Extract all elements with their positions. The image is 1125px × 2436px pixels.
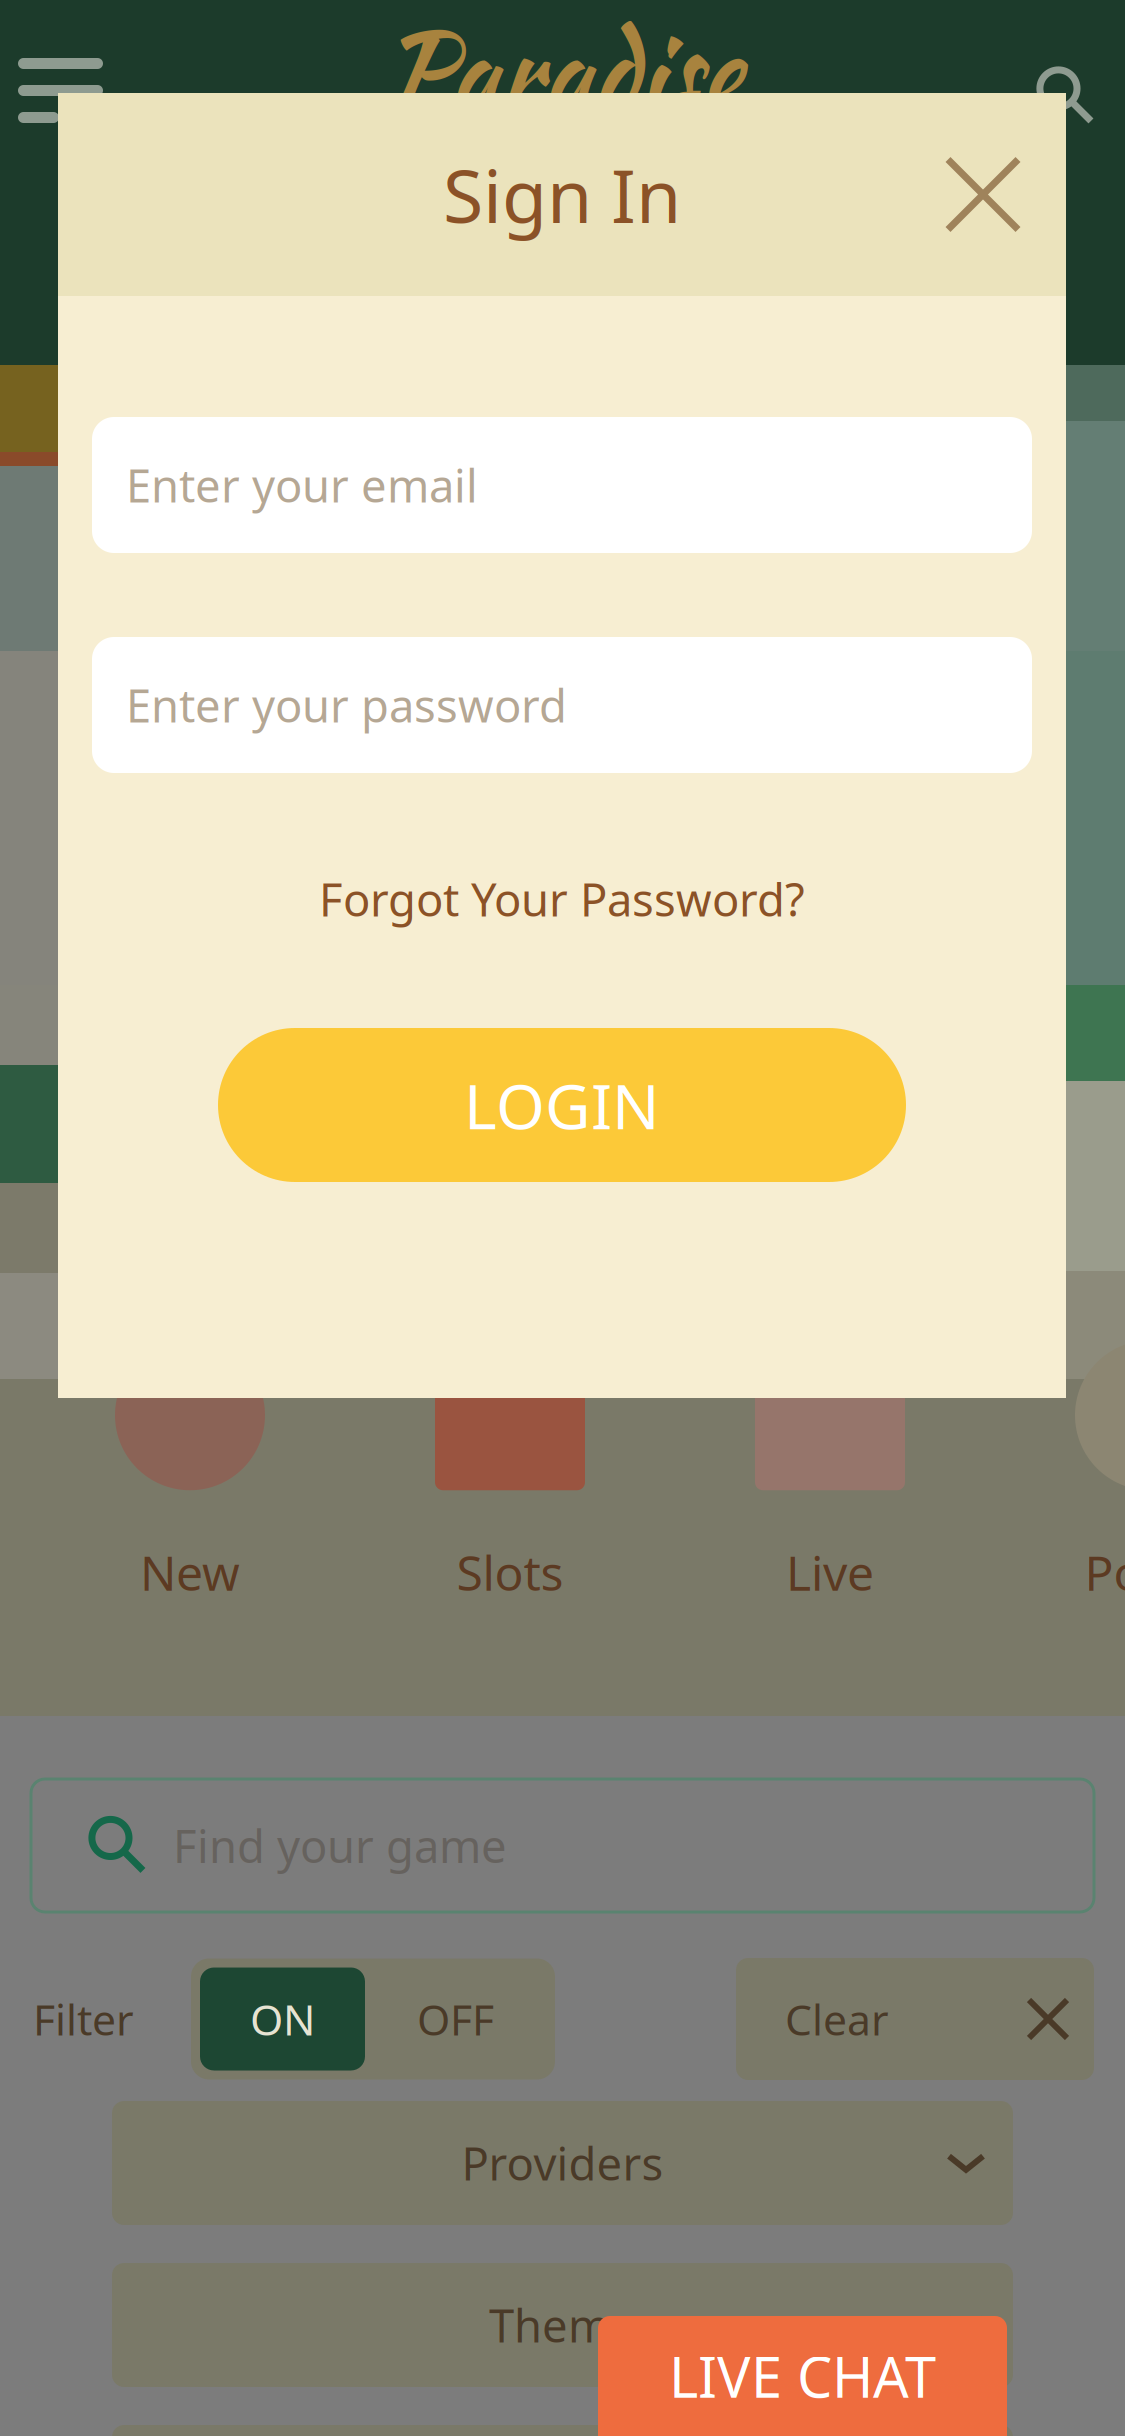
staticText: Slots xyxy=(456,1540,563,1604)
staticText: Forgot Your Password? xyxy=(319,869,805,929)
staticText: Sign In xyxy=(443,146,681,243)
button[interactable]: Live xyxy=(715,1340,945,1604)
staticText: New xyxy=(140,1540,240,1604)
staticText: Clear xyxy=(785,1991,889,2047)
button[interactable]: Enter your password xyxy=(92,637,1032,773)
staticText: Poker xyxy=(1084,1540,1125,1604)
button[interactable]: Menu xyxy=(18,58,143,178)
button[interactable]: Forgot Your Password? xyxy=(307,871,817,927)
staticText: OFF xyxy=(417,1991,494,2047)
button[interactable]: New xyxy=(75,1340,305,1604)
staticText: Theme xyxy=(489,2295,636,2355)
staticText: Filter xyxy=(33,1991,134,2047)
button[interactable]: Search xyxy=(1028,58,1104,134)
button[interactable]: Enter your email xyxy=(92,417,1032,553)
staticText: ON xyxy=(250,1991,315,2047)
button[interactable]: Theme xyxy=(112,2263,1013,2387)
button[interactable]: Close xyxy=(922,133,1044,255)
button[interactable]: Slots xyxy=(395,1340,625,1604)
staticText: LOGIN xyxy=(464,1063,660,1147)
button[interactable]: Clear xyxy=(736,1958,1094,2080)
staticText: Enter your email xyxy=(126,455,478,515)
staticText: Paradise xyxy=(382,0,742,149)
button[interactable]: LIVE CHAT xyxy=(598,2316,1007,2436)
button[interactable]: OFF xyxy=(365,1967,546,2070)
staticText: LIVE CHAT xyxy=(669,2339,936,2413)
button[interactable]: Find your game xyxy=(0,1779,1125,1912)
button[interactable]: Providers xyxy=(112,2101,1013,2225)
button[interactable]: Volatility xyxy=(112,2425,1013,2436)
button[interactable]: ON xyxy=(200,1967,365,2070)
button[interactable]: Poker xyxy=(1035,1340,1125,1604)
staticText: Live xyxy=(786,1540,874,1604)
staticText: Enter your password xyxy=(126,675,567,735)
button[interactable]: LOGIN xyxy=(218,1028,906,1182)
staticText: Providers xyxy=(461,2133,663,2193)
staticText: Find your game xyxy=(173,1815,507,1876)
